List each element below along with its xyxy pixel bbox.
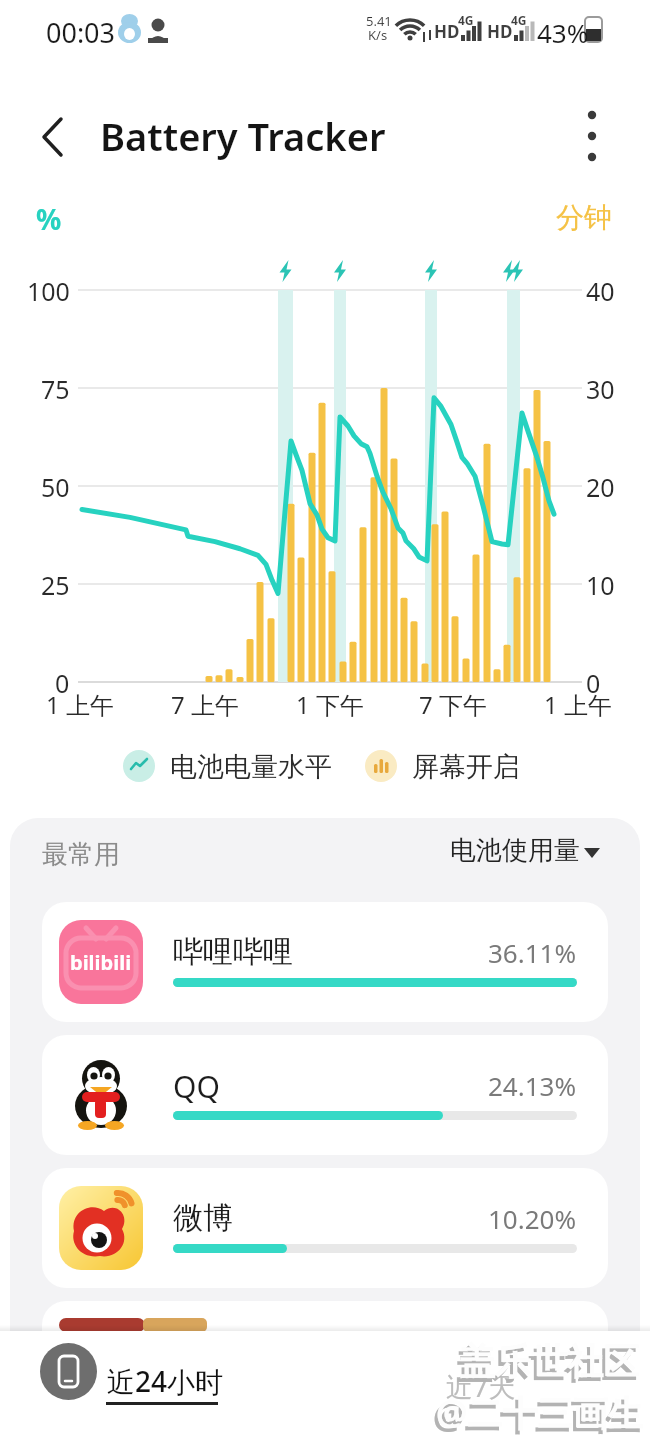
staticText: 7 上午 [171, 688, 239, 721]
staticText: 4G [511, 12, 527, 28]
button[interactable] [572, 106, 612, 166]
button[interactable]: QQ [42, 1035, 608, 1155]
button[interactable] [40, 1343, 97, 1400]
staticText: 最常用 [42, 838, 120, 871]
button[interactable]: 近7天 [446, 1368, 546, 1408]
staticText: 5.41 [366, 12, 392, 30]
staticText: bilibili [70, 949, 132, 976]
staticText: 10.20% [488, 1201, 577, 1236]
staticText: 75 [41, 372, 70, 406]
staticText: 25 [41, 568, 70, 602]
button[interactable]: 微博 [42, 1168, 608, 1288]
staticText: 1 上午 [544, 688, 612, 721]
button[interactable] [24, 112, 74, 162]
staticText: 00:03 [46, 14, 116, 51]
staticText: 哔哩哔哩 [173, 933, 293, 971]
staticText: 7 下午 [419, 688, 487, 721]
staticText: 0 [586, 666, 601, 700]
staticText: % [36, 200, 62, 238]
staticText: 盖乐世社区 [456, 1343, 636, 1388]
staticText: 4G [458, 12, 474, 28]
staticText: @二十三画生 [433, 1393, 640, 1441]
staticText: 1 下午 [296, 688, 364, 721]
staticText: HD [487, 20, 513, 43]
button[interactable]: 近24小时 [107, 1362, 237, 1408]
staticText: 10 [586, 568, 615, 602]
staticText: 电池使用量 [450, 834, 580, 867]
staticText: 20 [586, 470, 615, 504]
staticText: 24.13% [488, 1068, 577, 1103]
staticText: 电池电量水平 [170, 750, 332, 784]
staticText: 微博 [173, 1199, 233, 1237]
staticText: 近24小时 [107, 1362, 224, 1400]
staticText: 分钟 [556, 200, 612, 235]
staticText: 近7天 [446, 1368, 516, 1405]
button[interactable]: bilibili [42, 902, 608, 1022]
staticText: 盖乐世社区 [459, 1339, 639, 1384]
button[interactable]: 电池使用量 [440, 832, 610, 876]
staticText: 100 [27, 274, 70, 308]
staticText: K/s [368, 26, 388, 44]
staticText: 1 上午 [46, 688, 114, 721]
staticText: @二十三画生 [436, 1389, 643, 1437]
staticText: 屏幕开启 [412, 750, 520, 784]
staticText: QQ [173, 1066, 220, 1107]
staticText: 50 [41, 470, 70, 504]
staticText: 36.11% [488, 935, 577, 970]
staticText: 43% [537, 15, 589, 50]
staticText: HD [434, 20, 460, 43]
staticText: 40 [586, 274, 615, 308]
staticText: 0 [55, 666, 70, 700]
staticText: 30 [586, 372, 615, 406]
staticText: Battery Tracker [100, 110, 386, 162]
